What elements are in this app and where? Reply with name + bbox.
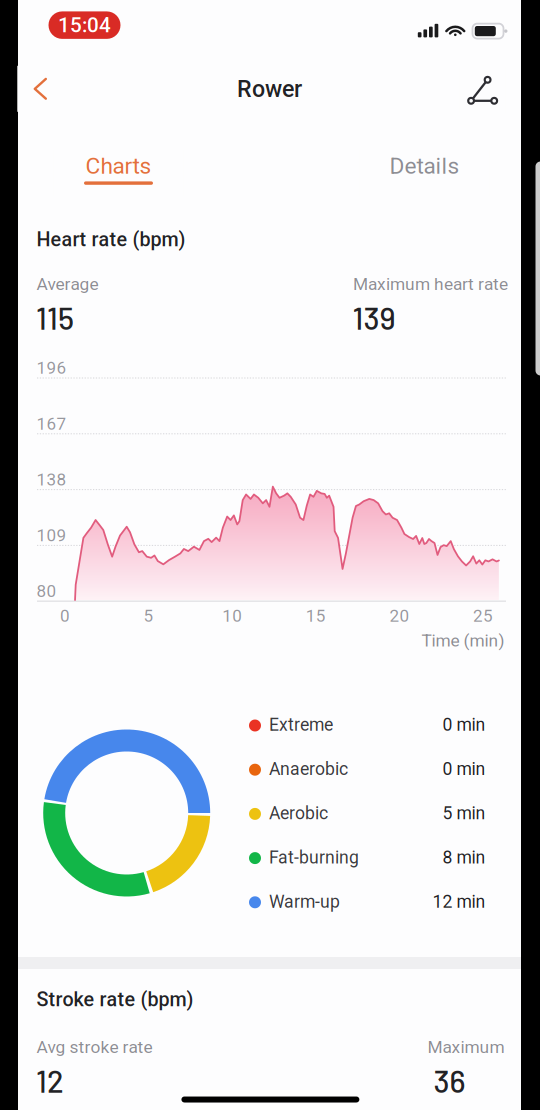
staticText: 25 (473, 606, 493, 626)
staticText: Warm-up (269, 891, 340, 912)
staticText: 5 min (442, 803, 485, 823)
staticText: 36 (433, 1062, 465, 1099)
button[interactable]: Details (359, 150, 489, 196)
staticText: Anaerobic (269, 759, 348, 779)
staticText: 196 (36, 358, 66, 378)
button[interactable]: Share (459, 67, 505, 113)
staticText: Fat-burning (269, 847, 359, 868)
staticText: 10 (222, 606, 242, 626)
staticText: Details (389, 153, 459, 179)
staticText: Extreme (269, 714, 333, 735)
staticText: 0 min (442, 714, 485, 735)
staticText: 167 (36, 414, 66, 434)
staticText: 109 (36, 525, 66, 545)
staticText: Heart rate (bpm) (36, 228, 185, 251)
staticText: 8 min (442, 847, 485, 868)
staticText: 5 (144, 606, 154, 626)
staticText: Charts (85, 153, 151, 179)
staticText: 138 (36, 470, 66, 490)
staticText: 80 (36, 581, 56, 601)
staticText: Aerobic (269, 803, 328, 823)
staticText: 20 (389, 606, 409, 626)
staticText: 0 (60, 606, 70, 626)
staticText: 115 (36, 299, 74, 336)
staticText: Maximum (427, 1037, 504, 1057)
staticText: 15:04 (58, 13, 111, 37)
staticText: Maximum heart rate (353, 274, 508, 294)
staticText: Stroke rate (bpm) (36, 988, 193, 1011)
staticText: 0 min (442, 759, 485, 779)
button[interactable]: Charts (53, 150, 183, 196)
staticText: Rower (237, 75, 302, 103)
staticText: 15 (306, 606, 326, 626)
staticText: 139 (352, 299, 395, 336)
staticText: Average (36, 274, 98, 294)
staticText: 12 (36, 1062, 64, 1099)
staticText: Time (min) (421, 630, 504, 651)
staticText: 12 min (432, 891, 485, 912)
button[interactable]: Back (17, 66, 63, 112)
staticText: Avg stroke rate (36, 1037, 152, 1057)
